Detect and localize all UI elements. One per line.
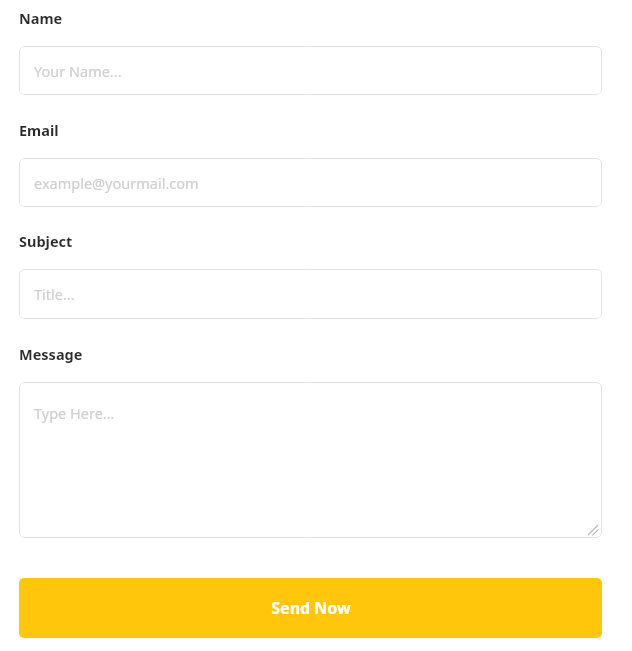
staticText: Title... — [34, 284, 75, 304]
button[interactable]: Your Name... — [19, 46, 602, 95]
staticText: example@yourmail.com — [34, 173, 199, 193]
button[interactable]: Title... — [19, 269, 602, 319]
staticText: Message — [19, 344, 83, 364]
staticText: Subject — [19, 231, 73, 251]
button[interactable]: Type Here... — [19, 382, 602, 538]
staticText: Type Here... — [34, 403, 115, 423]
staticText: Name — [19, 8, 63, 28]
staticText: Email — [19, 120, 59, 140]
button[interactable]: example@yourmail.com — [19, 158, 602, 207]
staticText: Your Name... — [34, 61, 122, 81]
staticText: Send Now — [271, 597, 351, 619]
button[interactable]: Send Now — [19, 578, 602, 638]
